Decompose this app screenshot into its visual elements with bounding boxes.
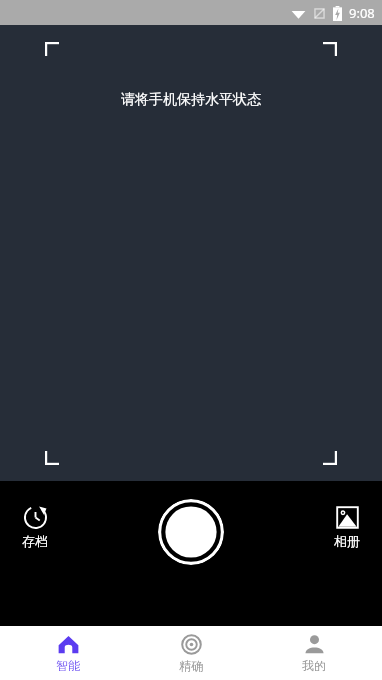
button[interactable]: 相册 bbox=[326, 502, 368, 552]
staticText: 请将手机保持水平状态 bbox=[121, 91, 261, 109]
button[interactable]: 智能 bbox=[13, 630, 123, 677]
staticText: 存档 bbox=[22, 533, 48, 549]
staticText: 精确 bbox=[179, 658, 203, 673]
staticText: 智能 bbox=[56, 658, 80, 673]
staticText: 9:08 bbox=[349, 4, 375, 22]
button[interactable]: 存档 bbox=[14, 502, 56, 552]
button[interactable]: 精确 bbox=[136, 630, 246, 677]
staticText: 我的 bbox=[302, 658, 326, 673]
staticText: 相册 bbox=[334, 533, 360, 549]
button[interactable]: 我的 bbox=[259, 630, 369, 677]
button[interactable]: Shutter bbox=[158, 499, 224, 565]
